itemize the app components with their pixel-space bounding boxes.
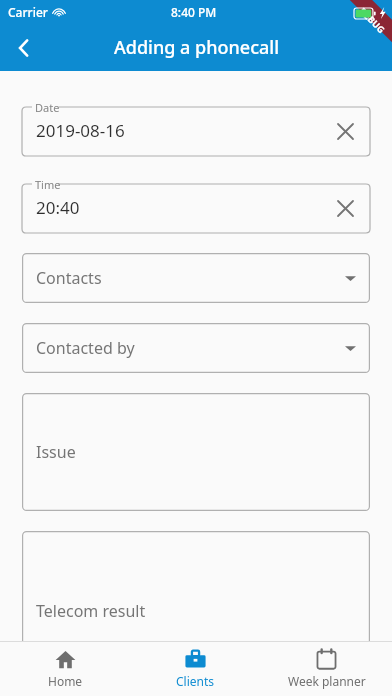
staticText: Carrier: [8, 4, 48, 20]
staticText: Contacted by: [36, 337, 135, 359]
button[interactable]: Issue: [22, 393, 370, 511]
button[interactable]: Contacts: [22, 253, 370, 303]
staticText: Time: [35, 177, 61, 192]
button[interactable]: Time: [22, 176, 370, 233]
button[interactable]: Back: [0, 24, 48, 71]
staticText: Clients: [176, 673, 215, 689]
button[interactable]: Date: [22, 99, 370, 156]
staticText: 20:40: [36, 196, 80, 219]
staticText: Contacts: [36, 267, 102, 289]
button[interactable]: Clear: [328, 114, 362, 148]
staticText: Home: [48, 673, 83, 689]
button[interactable]: Home: [0, 642, 130, 696]
staticText: 2019-08-16: [36, 119, 125, 142]
staticText: Week planner: [288, 673, 366, 689]
button[interactable]: Contacted by: [22, 323, 370, 373]
staticText: Adding a phonecall: [114, 35, 279, 60]
button[interactable]: Clear: [328, 191, 362, 225]
staticText: Telecom result: [36, 600, 146, 622]
staticText: Issue: [36, 441, 76, 463]
staticText: Date: [35, 100, 60, 115]
staticText: DEBUG: [357, 5, 388, 35]
button[interactable]: Week planner: [261, 642, 392, 696]
staticText: 8:40 PM: [171, 4, 217, 20]
button[interactable]: Clients: [130, 642, 261, 696]
button[interactable]: Telecom result: [22, 531, 370, 691]
